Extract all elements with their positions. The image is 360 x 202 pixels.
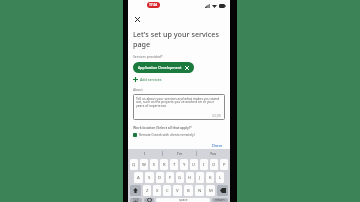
button[interactable]: Done [210, 142, 225, 149]
button[interactable]: S [145, 172, 154, 183]
button[interactable]: W [140, 159, 148, 170]
staticText: E [153, 162, 156, 168]
staticText: You [210, 151, 217, 156]
staticText: A [137, 175, 140, 181]
button[interactable]: P [220, 159, 228, 170]
staticText: O [212, 162, 216, 168]
button[interactable]: 123 [130, 198, 142, 202]
button[interactable]: T [170, 159, 178, 170]
button[interactable]: Add services [133, 77, 162, 82]
staticText: S [148, 175, 151, 181]
staticText: D [158, 175, 162, 181]
staticText: Q [132, 162, 136, 168]
staticText: X [156, 188, 159, 194]
staticText: Remote (I work with clients remotely) [139, 133, 195, 137]
staticText: N [198, 188, 202, 194]
button[interactable]: X [153, 185, 161, 196]
staticText: P [223, 162, 226, 168]
staticText: I [203, 162, 205, 168]
button[interactable]: return [212, 198, 228, 202]
staticText: 17:24 [149, 3, 158, 7]
button[interactable]: O [210, 159, 218, 170]
button[interactable] [130, 185, 141, 196]
staticText: T [173, 162, 176, 168]
button[interactable]: Q [130, 159, 138, 170]
staticText: I'm [177, 151, 183, 156]
button[interactable]: Y [180, 159, 188, 170]
staticText: Tell us about your services and what mak… [136, 96, 222, 108]
staticText: I [144, 151, 146, 156]
button[interactable]: E [150, 159, 158, 170]
staticText: Y [183, 162, 186, 168]
button[interactable]: L [216, 172, 224, 183]
button[interactable]: R [160, 159, 168, 170]
staticText: Work location (Select all that apply)* [133, 125, 192, 130]
button[interactable]: H [186, 172, 194, 183]
button[interactable]: G [176, 172, 184, 183]
staticText: W [142, 162, 146, 168]
staticText: Application Development [138, 65, 182, 70]
staticText: G [178, 175, 182, 181]
button[interactable] [144, 198, 154, 202]
button[interactable]: I [200, 159, 208, 170]
button[interactable]: V [173, 185, 182, 196]
button[interactable]: You [197, 149, 230, 158]
staticText: Add services [140, 77, 162, 82]
button[interactable]: Z [143, 185, 151, 196]
staticText: Services provided* [133, 54, 163, 59]
button[interactable]: Remote (I work with clients remotely) [133, 133, 195, 137]
staticText: V [176, 188, 179, 194]
button[interactable]: B [184, 185, 193, 196]
staticText: Z [146, 188, 149, 194]
button[interactable]: Close [133, 15, 142, 24]
staticText: U [192, 162, 196, 168]
staticText: J [199, 175, 201, 181]
staticText: C [166, 188, 169, 194]
button[interactable]: J [196, 172, 204, 183]
staticText: L [219, 175, 222, 181]
staticText: return [215, 198, 225, 202]
button[interactable] [217, 185, 228, 196]
button[interactable]: I'm [163, 149, 196, 158]
staticText: About [133, 87, 143, 92]
staticText: Let's set up your services page [133, 29, 225, 49]
button[interactable]: D [156, 172, 164, 183]
staticText: F [169, 175, 172, 181]
button[interactable]: Application Development [133, 62, 194, 73]
button[interactable]: A [134, 172, 143, 183]
staticText: Done [212, 143, 223, 148]
staticText: 123 [133, 198, 139, 202]
staticText: K [209, 175, 212, 181]
staticText: 0/2,000 [212, 114, 222, 118]
button[interactable]: Tell us about your services and what mak… [133, 94, 225, 120]
staticText: M [209, 188, 213, 194]
button[interactable]: C [163, 185, 171, 196]
staticText: B [187, 188, 190, 194]
button[interactable]: I [128, 149, 162, 158]
staticText: H [188, 175, 192, 181]
staticText: space [179, 198, 188, 202]
button[interactable]: M [206, 185, 215, 196]
button[interactable]: K [206, 172, 214, 183]
button[interactable]: N [195, 185, 204, 196]
button[interactable]: F [166, 172, 174, 183]
button[interactable]: space [156, 198, 210, 202]
staticText: R [163, 162, 166, 168]
button[interactable]: U [190, 159, 198, 170]
